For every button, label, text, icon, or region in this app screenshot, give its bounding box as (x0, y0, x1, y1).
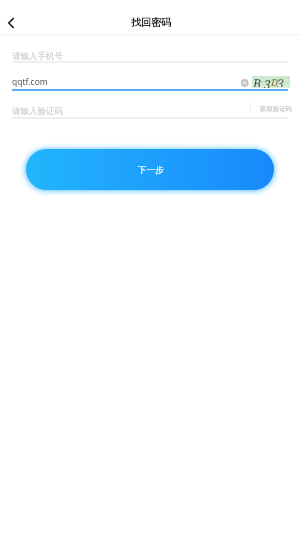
button[interactable]: Back (1, 13, 20, 32)
staticText: 获取验证码 (260, 105, 292, 113)
button[interactable]: 请输入手机号 (12, 47, 288, 64)
staticText: B (253, 75, 261, 87)
staticText: 请输入验证码 (12, 106, 63, 117)
button[interactable]: 请输入验证码 (12, 103, 247, 120)
button[interactable]: qqtf.com (12, 73, 236, 90)
staticText: 3 (277, 75, 284, 87)
staticText: qqtf.com (12, 76, 48, 88)
button[interactable]: 下一步 (26, 149, 274, 190)
staticText: 找回密码 (131, 16, 171, 29)
staticText: D (271, 76, 278, 88)
staticText: 3 (264, 76, 271, 88)
staticText: 请输入手机号 (12, 51, 63, 62)
staticText: 下一步 (138, 165, 164, 176)
button[interactable]: Refresh captcha image (252, 76, 290, 88)
button[interactable]: 获取验证码 (253, 100, 290, 115)
button[interactable]: Clear text (238, 76, 252, 90)
